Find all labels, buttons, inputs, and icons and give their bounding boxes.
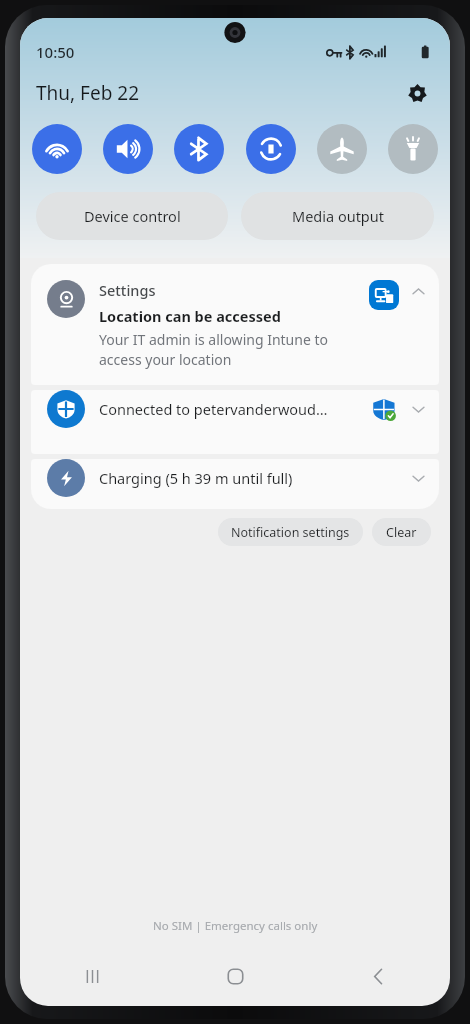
button[interactable]: Notification settings	[218, 518, 363, 546]
staticText: Notification settings	[231, 524, 350, 541]
button[interactable]: Settings	[31, 264, 439, 385]
staticText: Clear	[386, 524, 417, 541]
staticText: Media output	[292, 206, 384, 226]
staticText: 10:50	[36, 42, 75, 62]
button[interactable]: Wi-Fi	[32, 124, 82, 174]
button[interactable]: Media output	[241, 192, 434, 240]
button[interactable]: Bluetooth	[174, 124, 224, 174]
button[interactable]: Expand	[407, 467, 429, 489]
button[interactable]: Collapse	[407, 280, 429, 302]
staticText: Settings	[99, 280, 156, 300]
button[interactable]: Charging (5 h 39 m until full)	[31, 459, 439, 509]
button[interactable]: Flashlight	[388, 124, 438, 174]
button[interactable]: Airplane mode	[317, 124, 367, 174]
staticText: No SIM | Emergency calls only	[153, 918, 318, 934]
staticText: Charging (5 h 39 m until full)	[99, 468, 407, 488]
button[interactable]: Clear	[372, 518, 431, 546]
button[interactable]: Auto rotate	[246, 124, 296, 174]
button[interactable]: Expand	[407, 398, 429, 420]
button[interactable]: Sound	[103, 124, 153, 174]
button[interactable]: Device control	[36, 192, 228, 240]
staticText: Location can be accessed	[99, 306, 281, 326]
button[interactable]: Back	[307, 959, 450, 993]
button[interactable]: Recents	[20, 959, 164, 993]
staticText: Your IT admin is allowing Intune to acce…	[99, 330, 363, 369]
staticText: Connected to petervanderwoud…	[99, 399, 365, 419]
button[interactable]: Home	[164, 959, 307, 993]
staticText: Device control	[84, 206, 181, 226]
button[interactable]: Connected to petervanderwoud…	[31, 390, 439, 454]
button[interactable]: Settings	[398, 74, 436, 112]
staticText: Thu, Feb 22	[36, 80, 140, 106]
